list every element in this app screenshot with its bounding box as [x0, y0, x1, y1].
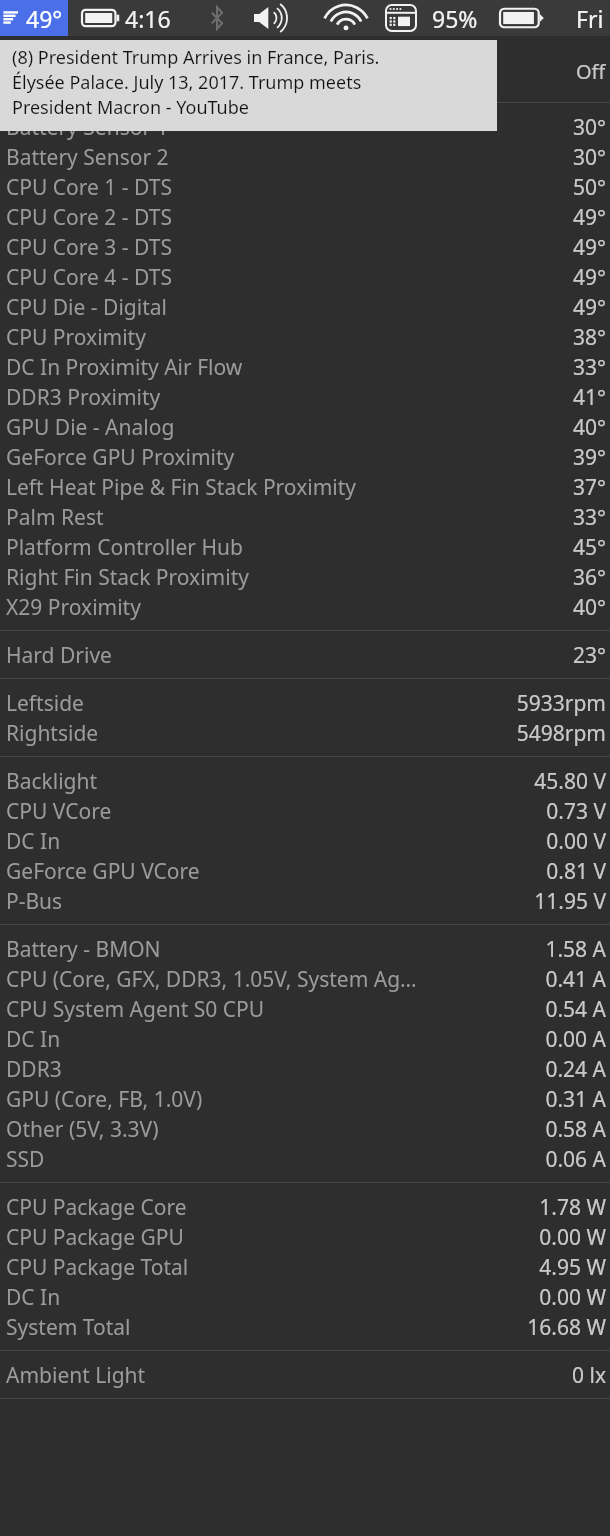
button[interactable]: Leftside	[0, 688, 610, 718]
staticText: SSD	[6, 1145, 537, 1174]
button[interactable]: GeForce GPU Proximity	[0, 442, 610, 472]
staticText: 0.41 A	[545, 965, 606, 994]
button[interactable]: CPU Package Total	[0, 1252, 610, 1282]
staticText: CPU Core 4 - DTS	[6, 263, 564, 292]
button[interactable]: GPU Die - Analog	[0, 412, 610, 442]
staticText: 49°	[26, 3, 63, 34]
button[interactable]: CPU Core 3 - DTS	[0, 232, 610, 262]
staticText: Hard Drive	[6, 641, 564, 670]
staticText: (8) President Trump Arrives in France, P…	[12, 45, 380, 70]
button[interactable]: Battery Sensor 2	[0, 142, 610, 172]
button[interactable]: Platform Controller Hub	[0, 532, 610, 562]
staticText: 0.54 A	[545, 995, 606, 1024]
button[interactable]: Battery time remaining	[82, 0, 120, 36]
button[interactable]: CPU Core 4 - DTS	[0, 262, 610, 292]
staticText: 0.24 A	[545, 1055, 606, 1084]
staticText: Élysée Palace. July 13, 2017. Trump meet…	[12, 70, 362, 95]
button[interactable]: CPU Core 1 - DTS	[0, 172, 610, 202]
staticText: 38°	[572, 323, 606, 352]
button[interactable]: Battery 95 percent	[496, 0, 548, 36]
button[interactable]: CPU Package GPU	[0, 1222, 610, 1252]
button[interactable]: Rightside	[0, 718, 610, 748]
staticText: CPU (Core, GFX, DDR3, 1.05V, System Ag…	[6, 965, 537, 994]
button[interactable]: Bluetooth	[202, 0, 232, 36]
staticText: Right Fin Stack Proximity	[6, 563, 564, 592]
staticText: Battery Sensor 2	[6, 143, 564, 172]
button[interactable]: (8) President Trump Arrives in France, P…	[0, 40, 497, 131]
button[interactable]: Temperature 49 degrees	[0, 0, 68, 36]
button[interactable]: SSD	[0, 1144, 610, 1174]
button[interactable]: DDR3	[0, 1054, 610, 1084]
staticText: Platform Controller Hub	[6, 533, 564, 562]
staticText: Left Heat Pipe & Fin Stack Proximity	[6, 473, 564, 502]
staticText: 0 lx	[572, 1361, 606, 1390]
staticText: 33°	[572, 503, 606, 532]
button[interactable]: System Total	[0, 1312, 610, 1342]
staticText: 50°	[572, 173, 606, 202]
staticText: CPU VCore	[6, 797, 538, 826]
staticText: GPU (Core, FB, 1.0V)	[6, 1085, 537, 1114]
button[interactable]: CPU Core 2 - DTS	[0, 202, 610, 232]
button[interactable]: DDR3 Proximity	[0, 382, 610, 412]
staticText: DC In Proximity Air Flow	[6, 353, 564, 382]
staticText: 41°	[572, 383, 606, 412]
staticText: 49°	[572, 263, 606, 292]
staticText: X29 Proximity	[6, 593, 564, 622]
button[interactable]: DC In Proximity Air Flow	[0, 352, 610, 382]
button[interactable]: Wi-Fi	[318, 0, 374, 36]
staticText: 0.58 A	[545, 1115, 606, 1144]
button[interactable]: Input menu	[378, 0, 424, 36]
button[interactable]: Ambient Light	[0, 1360, 610, 1390]
button[interactable]: CPU System Agent S0 CPU	[0, 994, 610, 1024]
staticText: CPU System Agent S0 CPU	[6, 995, 537, 1024]
staticText: P-Bus	[6, 887, 526, 916]
button[interactable]: Right Fin Stack Proximity	[0, 562, 610, 592]
button[interactable]: GeForce GPU VCore	[0, 856, 610, 886]
button[interactable]: CPU Proximity	[0, 322, 610, 352]
button[interactable]: Backlight	[0, 766, 610, 796]
staticText: CPU Package GPU	[6, 1223, 531, 1252]
button[interactable]: Volume	[248, 0, 304, 36]
staticText: 0.00 A	[545, 1025, 606, 1054]
button[interactable]: CPU (Core, GFX, DDR3, 1.05V, System Ag…	[0, 964, 610, 994]
button[interactable]: Battery - BMON	[0, 934, 610, 964]
staticText: 1.58 A	[545, 935, 606, 964]
button[interactable]: P-Bus	[0, 886, 610, 916]
staticText: Leftside	[6, 689, 508, 718]
button[interactable]: DC In	[0, 826, 610, 856]
staticText: 5933rpm	[516, 689, 606, 718]
staticText: CPU Proximity	[6, 323, 564, 352]
staticText: 45°	[572, 533, 606, 562]
button[interactable]: CPU Die - Digital	[0, 292, 610, 322]
staticText: 4.95 W	[539, 1253, 606, 1282]
staticText: President Macron - YouTube	[12, 95, 249, 120]
staticText: Backlight	[6, 767, 526, 796]
button[interactable]: Left Heat Pipe & Fin Stack Proximity	[0, 472, 610, 502]
button[interactable]: Off	[0, 40, 610, 102]
button[interactable]: CPU VCore	[0, 796, 610, 826]
button[interactable]: CPU Package Core	[0, 1192, 610, 1222]
button[interactable]: Hard Drive	[0, 640, 610, 670]
staticText: 23°	[572, 641, 606, 670]
button[interactable]: GPU (Core, FB, 1.0V)	[0, 1084, 610, 1114]
button[interactable]: Battery Sensor 1	[0, 112, 610, 142]
staticText: 39°	[572, 443, 606, 472]
staticText: 40°	[572, 413, 606, 442]
staticText: 95%	[432, 3, 478, 34]
staticText: 49°	[572, 233, 606, 262]
button[interactable]: DC In	[0, 1024, 610, 1054]
button[interactable]: X29 Proximity	[0, 592, 610, 622]
staticText: GeForce GPU VCore	[6, 857, 538, 886]
staticText: 45.80 V	[534, 767, 606, 796]
button[interactable]: Palm Rest	[0, 502, 610, 532]
staticText: Palm Rest	[6, 503, 564, 532]
staticText: 33°	[572, 353, 606, 382]
staticText: DC In	[6, 827, 538, 856]
staticText: CPU Core 1 - DTS	[6, 173, 564, 202]
button[interactable]: Other (5V, 3.3V)	[0, 1114, 610, 1144]
staticText: GeForce GPU Proximity	[6, 443, 564, 472]
button[interactable]: DC In	[0, 1282, 610, 1312]
staticText: System Total	[6, 1313, 519, 1342]
staticText: DC In	[6, 1283, 531, 1312]
staticText: 0.31 A	[545, 1085, 606, 1114]
